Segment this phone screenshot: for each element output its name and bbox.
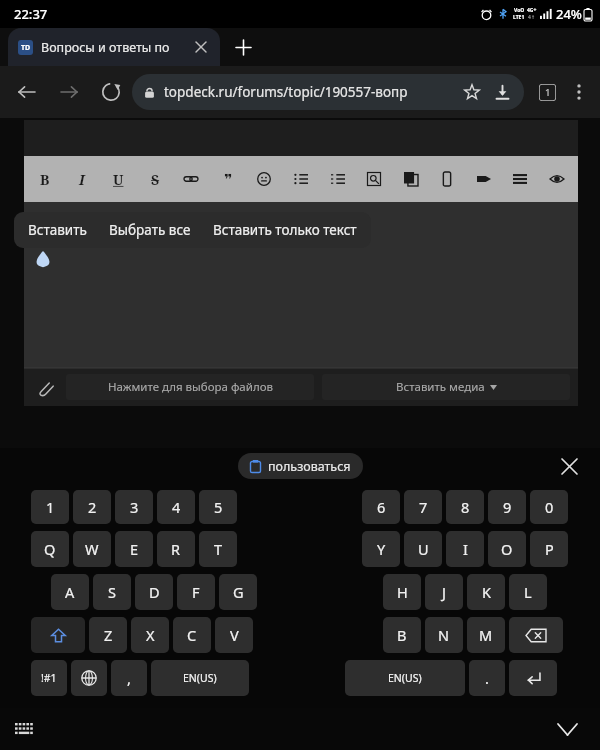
button[interactable]: N xyxy=(425,617,463,653)
button[interactable]: Вставить только текст xyxy=(213,221,357,239)
button[interactable]: EN(US) xyxy=(345,660,465,696)
staticText: F xyxy=(192,582,200,602)
button[interactable]: Copy xyxy=(398,162,424,196)
button[interactable]: Bullet list xyxy=(288,162,314,196)
staticText: 4↑ xyxy=(528,14,536,21)
button[interactable]: A xyxy=(51,574,89,610)
button[interactable]: . xyxy=(469,660,505,696)
button[interactable]: Z xyxy=(89,617,127,653)
button[interactable]: P xyxy=(530,531,568,567)
button[interactable]: 5 xyxy=(199,490,237,524)
staticText: B xyxy=(397,625,407,645)
button[interactable]: Y xyxy=(362,531,400,567)
button[interactable]: L xyxy=(509,574,547,610)
button[interactable]: Attach file xyxy=(32,374,58,400)
button[interactable]: K xyxy=(467,574,505,610)
staticText: W xyxy=(85,539,99,559)
button[interactable]: G xyxy=(219,574,257,610)
button[interactable]: B xyxy=(383,617,421,653)
button[interactable]: J xyxy=(425,574,463,610)
staticText: T xyxy=(214,539,223,559)
button[interactable]: !#1 xyxy=(31,660,67,696)
button[interactable]: 8 xyxy=(446,490,484,524)
button[interactable]: O xyxy=(488,531,526,567)
button[interactable]: E xyxy=(115,531,153,567)
staticText: X xyxy=(146,625,155,645)
button[interactable]: D xyxy=(135,574,173,610)
staticText: EN(US) xyxy=(183,671,217,685)
staticText: 5 xyxy=(214,497,223,517)
button[interactable]: X xyxy=(131,617,169,653)
button[interactable]: H xyxy=(383,574,421,610)
button[interactable]: Download xyxy=(492,82,512,102)
button[interactable]: Back xyxy=(6,71,48,113)
button[interactable]: Switch keyboard xyxy=(8,713,40,745)
button[interactable]: Menu xyxy=(507,162,533,196)
button[interactable]: Выбрать все xyxy=(109,221,191,239)
staticText: 2 xyxy=(88,497,97,517)
button[interactable]: Close tab xyxy=(192,38,210,56)
button[interactable]: B xyxy=(32,162,58,196)
button[interactable]: Нажмите для выбора файлов xyxy=(66,374,314,400)
button[interactable]: M xyxy=(467,617,505,653)
button[interactable]: Вставить медиа xyxy=(322,374,570,400)
button[interactable]: R xyxy=(157,531,195,567)
button[interactable]: Reload xyxy=(90,71,132,113)
staticText: 0 xyxy=(545,497,554,517)
staticText: E xyxy=(130,539,139,559)
button[interactable]: Close suggestions xyxy=(554,451,584,481)
button[interactable]: 6 xyxy=(362,490,400,524)
button[interactable]: Change language xyxy=(71,660,107,696)
button[interactable]: T xyxy=(199,531,237,567)
button[interactable]: 4 xyxy=(157,490,195,524)
button[interactable]: 0 xyxy=(530,490,568,524)
staticText: J xyxy=(442,582,446,602)
button[interactable]: Tag xyxy=(471,162,497,196)
button[interactable]: Q xyxy=(31,531,69,567)
staticText: L xyxy=(524,582,532,602)
button[interactable]: New tab xyxy=(220,28,266,66)
button[interactable]: C xyxy=(173,617,211,653)
button[interactable]: ❞ xyxy=(215,162,241,196)
button[interactable]: пользоваться xyxy=(238,453,363,479)
button[interactable]: 2 xyxy=(73,490,111,524)
button[interactable]: Вставить xyxy=(28,221,87,239)
button[interactable]: Backspace xyxy=(509,617,563,653)
staticText: EN(US) xyxy=(388,671,422,685)
staticText: 7 xyxy=(419,497,428,517)
button[interactable]: F xyxy=(177,574,215,610)
button[interactable]: TD xyxy=(8,28,220,66)
button[interactable]: , xyxy=(111,660,147,696)
button[interactable]: 7 xyxy=(404,490,442,524)
button[interactable]: Mobile xyxy=(434,162,460,196)
staticText: LTE1 xyxy=(513,14,525,21)
button[interactable]: Hide keyboard xyxy=(550,712,584,746)
button[interactable]: Link xyxy=(178,162,204,196)
button[interactable]: U xyxy=(404,531,442,567)
button[interactable]: Forward xyxy=(48,71,90,113)
button[interactable]: Tabs xyxy=(530,75,564,109)
button[interactable]: V xyxy=(215,617,253,653)
button[interactable]: 9 xyxy=(488,490,526,524)
button[interactable]: S xyxy=(142,162,168,196)
staticText: P xyxy=(545,539,554,559)
button[interactable]: Source xyxy=(361,162,387,196)
button[interactable]: I xyxy=(69,162,95,196)
button[interactable]: U xyxy=(105,162,131,196)
button[interactable]: Bookmark xyxy=(462,82,482,102)
button[interactable]: 1 xyxy=(31,490,69,524)
button[interactable]: More options xyxy=(564,77,594,107)
button[interactable]: W xyxy=(73,531,111,567)
button[interactable]: Shift xyxy=(31,617,85,653)
staticText: Выбрать все xyxy=(109,221,191,239)
button[interactable]: EN(US) xyxy=(151,660,249,696)
button[interactable]: Numbered list xyxy=(325,162,351,196)
button[interactable]: S xyxy=(93,574,131,610)
button[interactable]: topdeck.ru/forums/topic/190557-вопр xyxy=(132,74,524,110)
button[interactable]: I xyxy=(446,531,484,567)
staticText: G xyxy=(233,582,244,602)
button[interactable]: Emoji xyxy=(251,162,277,196)
button[interactable]: Enter xyxy=(509,660,557,696)
button[interactable]: 3 xyxy=(115,490,153,524)
button[interactable]: Preview xyxy=(544,162,570,196)
